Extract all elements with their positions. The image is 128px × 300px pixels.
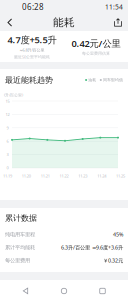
staticText: 11-20 [22,173,31,179]
button[interactable]: 返回 [12,282,38,300]
staticText: 每公里费用 [5,257,30,264]
staticText: 6 [6,138,8,144]
staticText: 12 [5,112,9,117]
staticText: 11-21 [41,173,50,179]
button[interactable]: 最近任务 [89,282,115,300]
button[interactable]: 返回 [0,14,20,30]
staticText: 最近能耗趋势 [5,75,53,85]
staticText: 0 [6,165,8,170]
staticText: 11-19 [3,173,12,179]
staticText: 累计数据 [5,213,37,223]
staticText: 11:54 [105,3,123,11]
staticText: ￥0.32元 [103,257,123,264]
staticText: 9 [6,125,8,130]
staticText: 11-22 [59,173,68,179]
staticText: 能耗 [53,16,75,29]
staticText: 15 [5,99,9,104]
staticText: 06:28 [22,2,44,12]
staticText: 4.7度+5.5升 [7,33,56,46]
staticText: 同车型均值 [103,77,123,82]
staticText: 最近50公里平均能耗 [14,54,50,59]
staticText: 累计平均能耗 [5,244,35,251]
button[interactable]: 分享 [108,14,128,30]
staticText: (升/百公里) [4,92,23,98]
staticText: 45% [113,231,123,238]
staticText: 纯电用车里程 [5,231,35,238]
button[interactable]: 主页 [51,282,77,300]
staticText: 11-24 [97,173,106,179]
staticText: 11-23 [78,173,87,179]
staticText: 6.3升/百公里 ≈9.6度+3.6升 [61,244,123,251]
staticText: 11-25 [116,173,125,179]
staticText: 每公里费用估算 [82,51,110,56]
staticText: 0.42元/公里 [71,37,120,49]
staticText: 3 [6,152,8,157]
staticText: 油耗 [88,77,96,82]
staticText: ≈6.8升/百公里 [19,47,44,53]
